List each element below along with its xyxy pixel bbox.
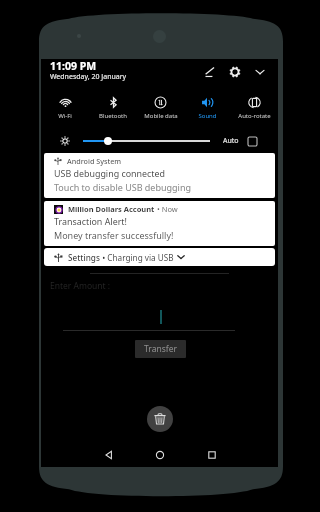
staticText: Auto [223,136,239,146]
button[interactable]: Mobile data [137,95,184,121]
staticText: Transaction Alert! [54,215,127,227]
staticText: Wednesday, 20 January [50,72,127,82]
staticText: Bluetooth [99,112,127,120]
staticText: Wi-Fi [58,112,72,120]
button[interactable]: Collapse [252,64,268,80]
staticText: Sound [198,112,217,120]
button[interactable]: Settings [227,64,243,80]
button[interactable]: Android System [44,153,275,198]
button[interactable]: Edit [202,64,218,80]
staticText: Android System [67,156,122,166]
staticText: Million Dollars Account [68,204,155,214]
button[interactable]: Settings [44,248,275,266]
staticText: Settings [68,252,100,263]
button[interactable]: Million Dollars Account [44,201,275,246]
button[interactable]: Recents [202,445,222,465]
staticText: USB debugging connected [54,167,166,179]
staticText: • Charging via USB [100,252,174,263]
staticText: 11:09 PM [50,59,97,73]
button[interactable]: Back [99,445,119,465]
button[interactable]: Wi-Fi [41,95,89,121]
staticText: Auto-rotate [238,112,271,120]
button[interactable]: Delete [147,406,173,432]
staticText: Enter Amount : [50,280,111,292]
button[interactable]: Auto brightness [248,137,257,146]
staticText: Money transfer successfully! [54,229,174,241]
button[interactable]: Transfer [135,340,186,358]
button[interactable]: Bluetooth [89,95,137,121]
staticText: Transfer [144,343,177,355]
staticText: Touch to disable USB debugging [54,181,192,193]
button[interactable]: Auto-rotate [231,95,278,121]
button[interactable]: Sound [184,95,231,121]
button[interactable]: Home [150,445,170,465]
staticText: • Now [155,204,178,214]
staticText: Mobile data [144,112,178,120]
